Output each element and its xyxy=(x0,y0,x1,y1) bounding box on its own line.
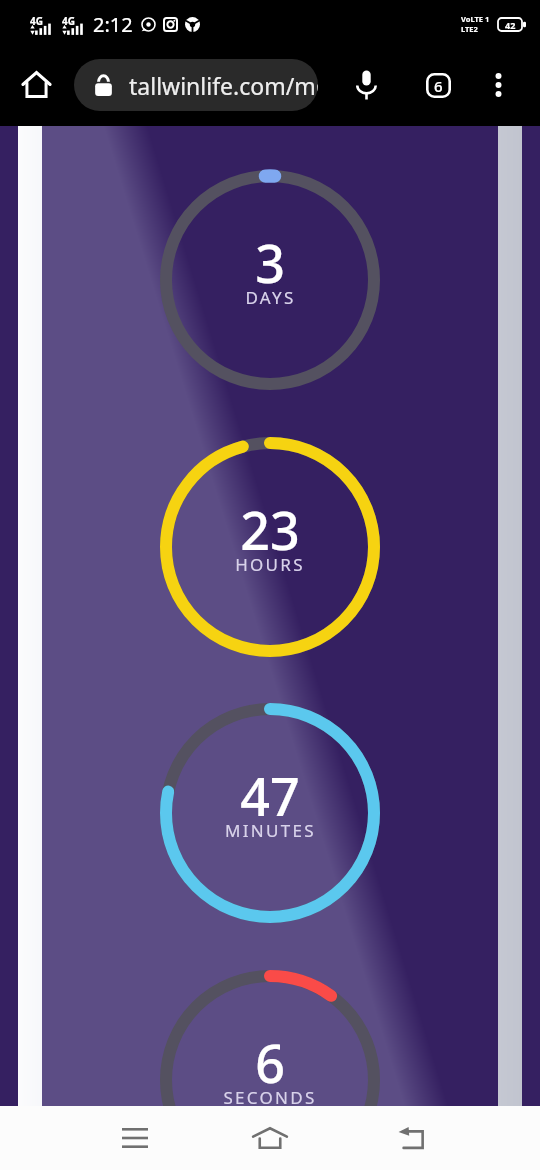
staticText: 47 xyxy=(240,760,300,831)
staticText: SECONDS xyxy=(223,1086,317,1109)
staticText: DAYS xyxy=(245,286,296,309)
staticText: 23 xyxy=(240,494,300,565)
button[interactable]: Recent apps xyxy=(99,1106,171,1170)
staticText: 3 xyxy=(255,227,285,298)
staticText: 4G xyxy=(30,14,43,28)
button[interactable]: More options xyxy=(472,59,524,111)
staticText: VoLTE 1 xyxy=(461,14,490,24)
button[interactable]: tallwinlife.com/more xyxy=(74,59,318,111)
button[interactable]: Back xyxy=(376,1106,448,1170)
staticText: MINUTES xyxy=(225,819,316,842)
button[interactable]: Home page xyxy=(10,58,62,110)
staticText: HOURS xyxy=(235,553,305,576)
button[interactable]: Voice search xyxy=(340,59,392,111)
staticText: 6 xyxy=(255,1027,285,1098)
staticText: 2:12 xyxy=(93,11,133,38)
button[interactable]: Switch tabs, 6 open xyxy=(412,59,464,111)
button[interactable]: Home xyxy=(234,1106,306,1170)
staticText: 4G xyxy=(62,14,75,28)
staticText: 42 xyxy=(505,19,516,31)
staticText: tallwinlife.com/more xyxy=(129,70,318,101)
staticText: LTE2 xyxy=(461,24,478,34)
staticText: 6 xyxy=(434,76,443,96)
